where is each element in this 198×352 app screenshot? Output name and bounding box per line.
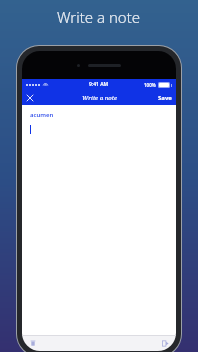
- staticText: Save: [158, 94, 172, 102]
- button[interactable]: Share: [159, 337, 171, 349]
- staticText: acumen: [30, 111, 54, 119]
- button[interactable]: Save: [158, 94, 172, 102]
- staticText: Write a note: [82, 94, 117, 102]
- staticText: 9:41 AM: [89, 81, 109, 88]
- staticText: Write a note: [57, 7, 141, 27]
- button[interactable]: Delete: [27, 337, 39, 349]
- button[interactable]: Close: [22, 90, 37, 105]
- staticText: 100%: [144, 82, 156, 88]
